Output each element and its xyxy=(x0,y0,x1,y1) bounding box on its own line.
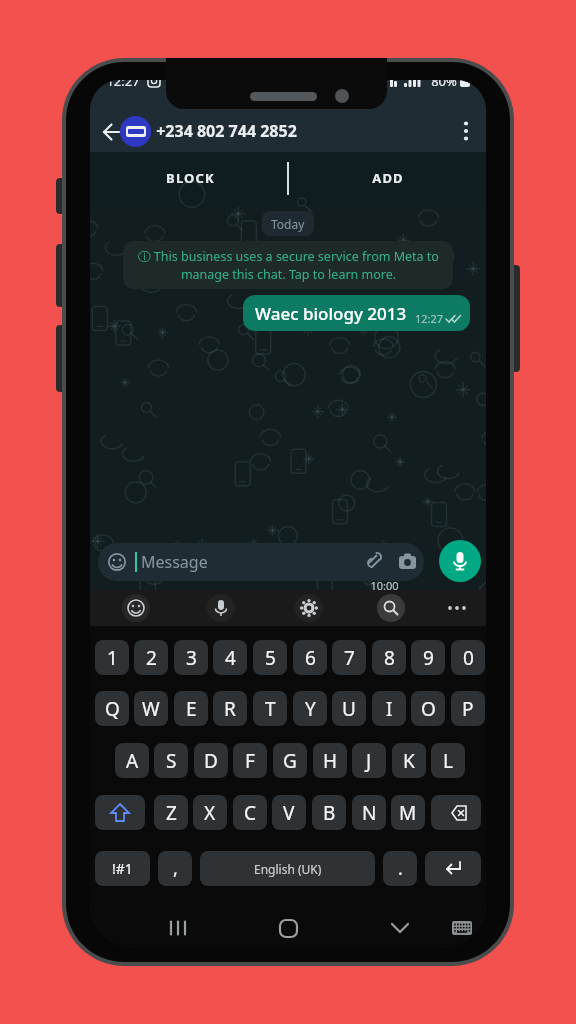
button[interactable] xyxy=(122,594,150,622)
button[interactable]: M xyxy=(391,795,425,830)
button[interactable] xyxy=(168,920,190,936)
button[interactable]: 2 xyxy=(134,640,168,675)
staticText: Message xyxy=(141,551,208,573)
button[interactable]: U xyxy=(332,691,366,726)
button[interactable]: ⓘ This business uses a secure service fr… xyxy=(123,241,453,289)
button[interactable]: 5 xyxy=(253,640,287,675)
button[interactable]: F xyxy=(233,743,267,778)
staticText: 0 xyxy=(463,645,474,671)
staticText: D xyxy=(204,748,218,774)
staticText: Y xyxy=(305,696,316,722)
button[interactable]: Q xyxy=(95,691,129,726)
staticText: ⓘ This business uses a secure service fr… xyxy=(138,248,439,283)
staticText: X xyxy=(204,800,216,826)
staticText: J xyxy=(366,748,372,774)
button[interactable]: 1 xyxy=(95,640,129,675)
button[interactable] xyxy=(120,116,151,147)
button[interactable]: D xyxy=(194,743,228,778)
staticText: N xyxy=(362,800,377,826)
button[interactable]: Y xyxy=(293,691,327,726)
staticText: 12:27 xyxy=(106,80,140,90)
staticText: R xyxy=(224,696,236,722)
button[interactable] xyxy=(295,594,323,622)
button[interactable]: X xyxy=(193,795,227,830)
staticText: C xyxy=(244,800,257,826)
staticText: T xyxy=(265,696,276,722)
button[interactable]: 6 xyxy=(293,640,327,675)
button[interactable] xyxy=(452,921,472,936)
button[interactable]: W xyxy=(134,691,168,726)
button[interactable] xyxy=(439,540,481,582)
staticText: 5 xyxy=(265,645,276,671)
staticText: F xyxy=(245,748,255,774)
button[interactable]: 8 xyxy=(372,640,406,675)
button[interactable]: English (UK) xyxy=(200,851,375,886)
button[interactable] xyxy=(207,594,235,622)
staticText: 2 xyxy=(146,645,157,671)
button[interactable] xyxy=(102,123,120,141)
staticText: 6 xyxy=(305,645,316,671)
staticText: M xyxy=(399,800,417,826)
button[interactable]: ADD xyxy=(318,164,458,192)
button[interactable] xyxy=(431,795,481,830)
button[interactable]: Z xyxy=(154,795,188,830)
staticText: I xyxy=(386,696,393,722)
button[interactable] xyxy=(95,795,145,830)
button[interactable]: Waec biology 2013 xyxy=(243,295,470,331)
staticText: 9 xyxy=(423,645,434,671)
button[interactable]: V xyxy=(272,795,306,830)
button[interactable]: A xyxy=(115,743,149,778)
button[interactable]: O xyxy=(411,691,445,726)
button[interactable]: L xyxy=(431,743,465,778)
staticText: A xyxy=(126,748,139,774)
button[interactable]: 9 xyxy=(411,640,445,675)
button[interactable] xyxy=(425,851,481,886)
button[interactable]: 3 xyxy=(174,640,208,675)
staticText: V xyxy=(283,800,295,826)
button[interactable]: S xyxy=(154,743,188,778)
button[interactable]: E xyxy=(174,691,208,726)
staticText: U xyxy=(342,696,356,722)
button[interactable]: B xyxy=(312,795,346,830)
staticText: P xyxy=(462,696,474,722)
button[interactable]: C xyxy=(233,795,267,830)
staticText: S xyxy=(166,748,177,774)
staticText: +234 802 744 2852 xyxy=(156,120,297,142)
staticText: 12:27 xyxy=(415,311,444,326)
staticText: . xyxy=(398,856,403,881)
button[interactable]: Message xyxy=(98,543,424,581)
staticText: Z xyxy=(166,800,177,826)
staticText: 4 xyxy=(225,645,236,671)
button[interactable]: J xyxy=(352,743,386,778)
button[interactable]: R xyxy=(213,691,247,726)
button[interactable] xyxy=(446,602,470,614)
staticText: 7 xyxy=(344,645,355,671)
button[interactable]: 4 xyxy=(213,640,247,675)
staticText: 3 xyxy=(186,645,197,671)
staticText: 8 xyxy=(384,645,395,671)
staticText: English (UK) xyxy=(254,861,322,877)
button[interactable]: +234 802 744 2852 xyxy=(156,116,416,146)
button[interactable]: P xyxy=(451,691,485,726)
button[interactable]: !#1 xyxy=(95,851,150,886)
staticText: B xyxy=(323,800,336,826)
staticText: K xyxy=(403,748,415,774)
button[interactable]: G xyxy=(273,743,307,778)
button[interactable]: T xyxy=(253,691,287,726)
button[interactable] xyxy=(456,120,476,142)
button[interactable]: N xyxy=(352,795,386,830)
button[interactable] xyxy=(377,594,405,622)
button[interactable]: . xyxy=(383,851,417,886)
staticText: !#1 xyxy=(112,859,133,878)
button[interactable]: BLOCK xyxy=(120,164,260,192)
button[interactable]: 0 xyxy=(451,640,485,675)
button[interactable] xyxy=(390,922,410,934)
button[interactable]: H xyxy=(313,743,347,778)
staticText: E xyxy=(186,696,197,722)
staticText: 80% xyxy=(431,80,457,90)
button[interactable]: , xyxy=(158,851,192,886)
button[interactable] xyxy=(279,919,298,938)
button[interactable]: I xyxy=(372,691,406,726)
button[interactable]: 7 xyxy=(332,640,366,675)
button[interactable]: K xyxy=(392,743,426,778)
